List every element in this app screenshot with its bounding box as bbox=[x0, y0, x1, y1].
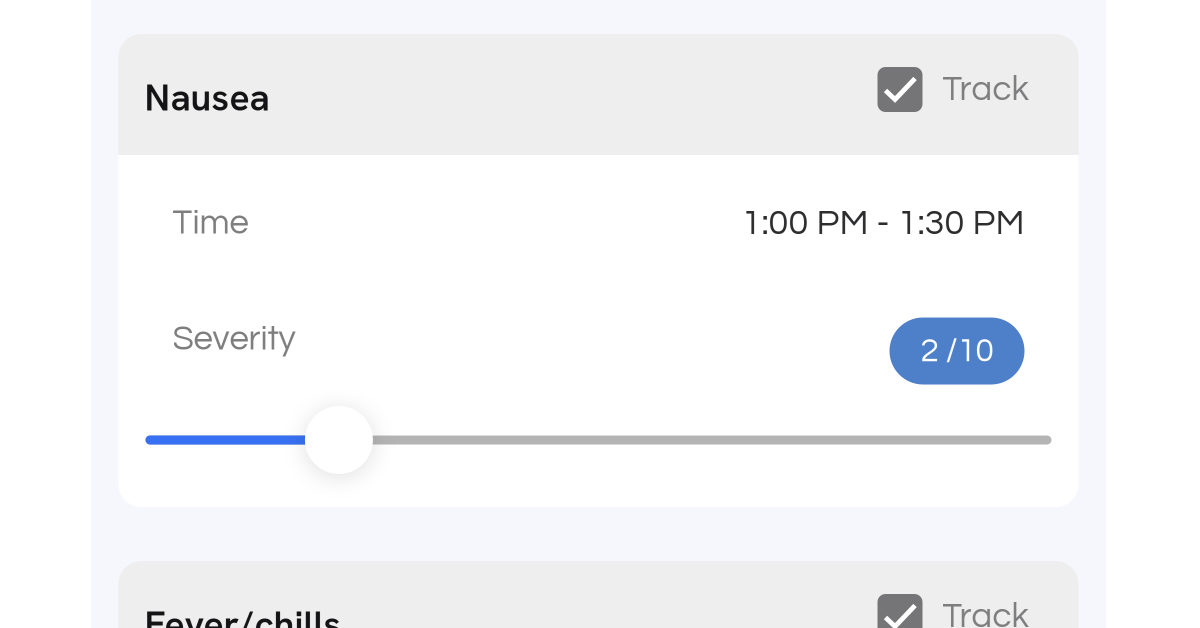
staticText: Time bbox=[172, 205, 248, 241]
button[interactable]: Adjust severity bbox=[118, 387, 1078, 507]
staticText: Track bbox=[942, 72, 1028, 107]
staticText: Nausea bbox=[144, 73, 269, 122]
button[interactable]: Track Nausea bbox=[877, 72, 1078, 117]
staticText: 1:00 PM - 1:30 PM bbox=[741, 204, 1024, 242]
staticText: Track bbox=[942, 599, 1028, 628]
button[interactable]: Track Fever/chills bbox=[877, 599, 1078, 628]
staticText: 2 /10 bbox=[920, 334, 993, 368]
button[interactable]: Severity 2 out of 10 bbox=[889, 305, 1024, 372]
staticText: Fever/chills bbox=[144, 600, 341, 628]
button[interactable]: Time bbox=[118, 155, 1078, 283]
staticText: Severity bbox=[172, 321, 295, 357]
